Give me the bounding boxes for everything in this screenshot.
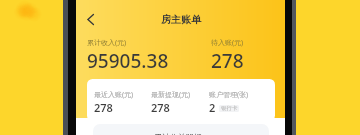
staticText: 278	[211, 48, 244, 74]
staticText: 278	[94, 100, 113, 115]
button[interactable]: 最近入账(元)	[87, 79, 275, 121]
staticText: 95905.38	[87, 48, 169, 74]
staticText: 278	[151, 100, 170, 115]
staticText: 累计收益明细	[154, 132, 202, 135]
staticText: 最新提现(元)	[151, 90, 191, 100]
staticText: 房主账单	[161, 13, 201, 26]
staticText: 待入账(元)	[211, 38, 244, 48]
staticText: 银行卡	[221, 105, 238, 112]
staticText: 2	[209, 100, 216, 115]
staticText: 最近入账(元)	[94, 90, 134, 100]
button[interactable]: Back	[81, 10, 99, 28]
button[interactable]	[93, 124, 269, 135]
staticText: 账户管理(张)	[209, 90, 249, 100]
staticText: 累计收入(元)	[87, 38, 127, 48]
